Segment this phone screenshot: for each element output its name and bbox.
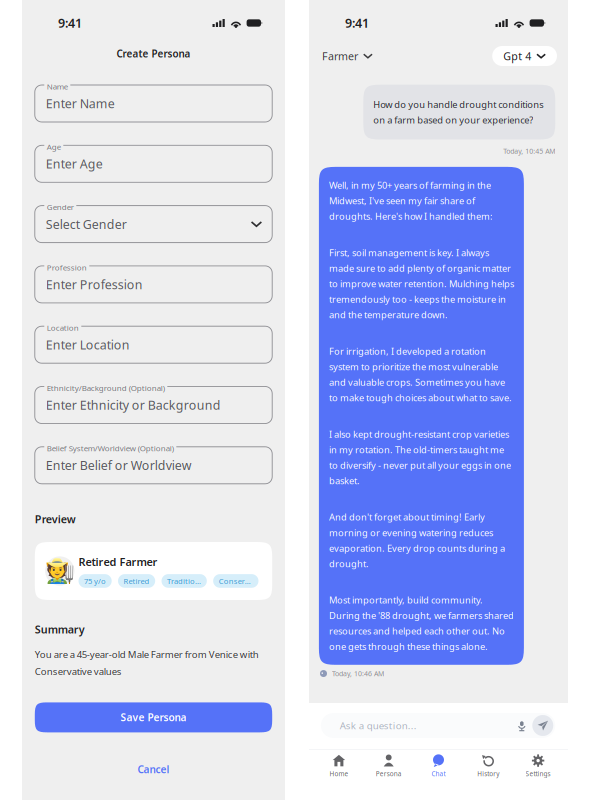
staticText: History [477, 769, 499, 778]
button[interactable]: Voice input [511, 714, 532, 737]
button[interactable]: Send [532, 715, 553, 736]
staticText: Today, 10:46 AM [332, 669, 384, 678]
staticText: Most importantly, build community. Durin… [329, 594, 514, 653]
staticText: And don't forget about timing! Early mor… [329, 511, 505, 570]
staticText: Preview [35, 512, 76, 526]
staticText: Enter Name [46, 95, 115, 112]
staticText: Persona [376, 769, 402, 778]
staticText: Today, 10:45 AM [503, 146, 555, 156]
staticText: Enter Age [46, 155, 103, 172]
button[interactable]: Enter Age [35, 145, 272, 182]
staticText: For irrigation, I developed a rotation s… [329, 345, 512, 404]
staticText: Create Persona [116, 47, 190, 60]
staticText: Belief System/Worldview (Optional) [47, 443, 174, 454]
button[interactable]: Settings [513, 752, 563, 780]
staticText: Retired Farmer [78, 554, 157, 569]
button[interactable]: Enter Name [35, 85, 272, 122]
button[interactable]: Save Persona [35, 702, 272, 732]
staticText: Retired [124, 576, 150, 586]
staticText: Age [47, 141, 61, 152]
staticText: Conservative [219, 576, 253, 586]
staticText: How do you handle drought conditions on … [373, 98, 543, 126]
button[interactable]: Enter Belief or Worldview [35, 447, 272, 484]
staticText: I also kept drought-resistant crop varie… [329, 428, 511, 487]
staticText: Enter Belief or Worldview [46, 457, 192, 474]
staticText: Save Persona [120, 710, 186, 724]
staticText: Farmer [322, 49, 358, 63]
button[interactable]: Chat [414, 752, 463, 780]
button[interactable]: Gpt 4 [492, 46, 557, 66]
staticText: Cancel [137, 762, 169, 776]
staticText: Settings [526, 769, 551, 778]
staticText: 9:41 [345, 14, 369, 32]
staticText: 🧑‍🌾 [45, 557, 75, 585]
button[interactable]: Farmer [322, 49, 373, 63]
button[interactable]: Enter Location [35, 326, 272, 363]
staticText: Gender [47, 202, 74, 212]
button[interactable]: Home [314, 752, 364, 780]
staticText: Traditional [167, 576, 201, 586]
staticText: Location [47, 322, 79, 333]
button[interactable]: Enter Profession [35, 266, 272, 303]
staticText: You are a 45-year-old Male Farmer from V… [35, 648, 259, 678]
staticText: Home [329, 769, 348, 778]
staticText: Ask a question... [340, 719, 417, 732]
staticText: 75 y/o [84, 576, 106, 586]
staticText: Ethnicity/Background (Optional) [47, 382, 165, 393]
staticText: Well, in my 50+ years of farming in the … [329, 179, 493, 223]
staticText: Profession [47, 262, 87, 273]
staticText: Enter Location [46, 336, 130, 353]
staticText: Enter Profession [46, 276, 143, 293]
button[interactable]: Enter Ethnicity or Background [35, 386, 272, 423]
button[interactable]: Select Gender [35, 206, 272, 243]
staticText: Chat [431, 769, 445, 778]
staticText: Summary [35, 622, 85, 637]
staticText: Select Gender [46, 216, 127, 233]
staticText: Gpt 4 [503, 49, 531, 63]
button[interactable]: Persona [364, 752, 414, 780]
staticText: First, soil management is key. I always … [329, 246, 514, 321]
staticText: Enter Ethnicity or Background [46, 397, 221, 413]
staticText: Name [47, 81, 68, 92]
button[interactable]: History [463, 752, 513, 780]
button[interactable]: Cancel [35, 758, 272, 780]
staticText: 9:41 [58, 14, 82, 32]
